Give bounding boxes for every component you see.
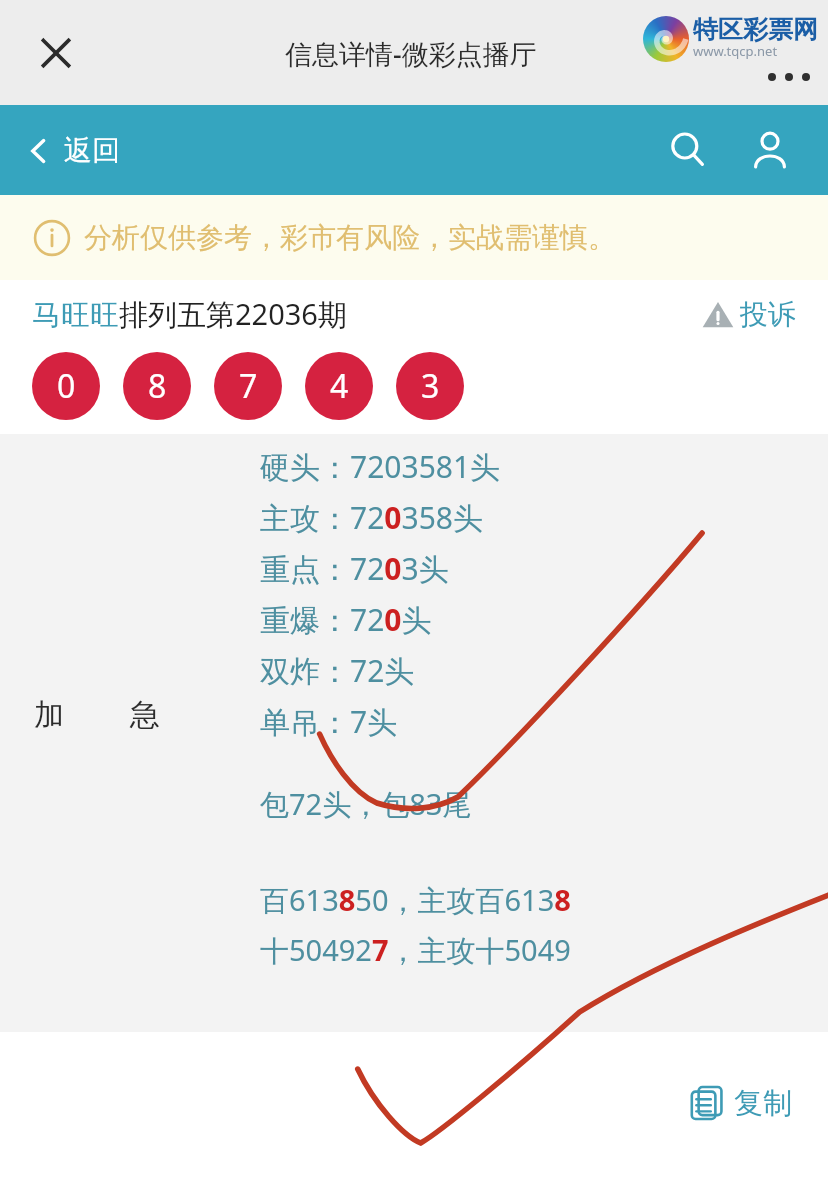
button[interactable]: 复制 (688, 1084, 792, 1122)
staticText: 重爆：720头 (260, 599, 432, 640)
staticText: 信息详情-微彩点播厅 (285, 35, 537, 72)
button[interactable]: Search (660, 122, 716, 178)
staticText: 4 (330, 364, 349, 408)
staticText: www.tqcp.net (693, 42, 778, 60)
staticText: 单吊：7头 (260, 701, 398, 742)
staticText: 双炸：72头 (260, 650, 415, 691)
button[interactable]: Account (742, 122, 798, 178)
button[interactable]: Close (28, 25, 84, 81)
button[interactable]: 返回 (26, 133, 120, 168)
staticText: 投诉 (740, 297, 796, 332)
staticText: 7 (239, 364, 258, 408)
staticText: 0 (57, 364, 76, 408)
staticText: 重点：7203头 (260, 548, 449, 589)
staticText: 加 (34, 696, 64, 734)
staticText: 百613850，主攻百6138 (260, 880, 571, 920)
staticText: 急 (130, 696, 160, 734)
staticText: 包72头，包83尾 (260, 784, 472, 824)
button[interactable]: 投诉 (701, 297, 796, 332)
staticText: 复制 (734, 1085, 792, 1122)
staticText: 3 (421, 364, 440, 408)
staticText: 8 (148, 364, 167, 408)
staticText: 硬头：7203581头 (260, 446, 501, 487)
staticText: 十504927，主攻十5049 (260, 930, 571, 970)
staticText: 返回 (64, 133, 120, 168)
staticText: 特区彩票网 (693, 14, 818, 45)
staticText: 主攻：720358头 (260, 497, 483, 538)
staticText: 分析仅供参考，彩市有风险，实战需谨慎。 (84, 220, 616, 255)
button[interactable]: More options (768, 73, 810, 81)
staticText: 马旺旺排列五第22036期 (32, 294, 347, 334)
